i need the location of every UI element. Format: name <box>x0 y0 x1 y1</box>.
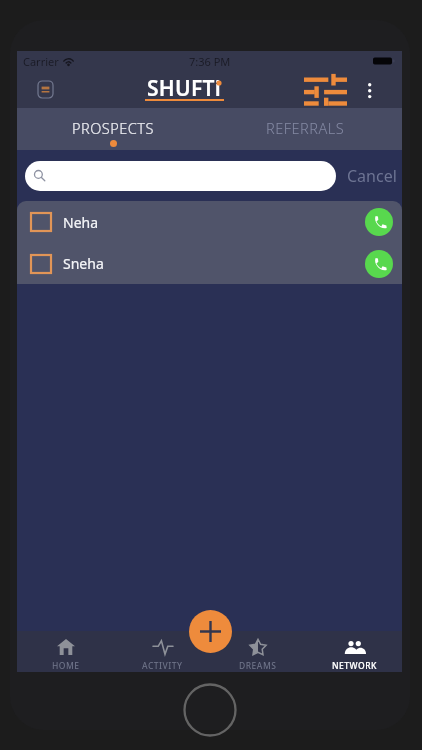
staticText: Sneha <box>63 254 104 273</box>
staticText: Carrier <box>23 54 59 69</box>
staticText: DREAMS <box>239 660 277 672</box>
button[interactable]: Menu <box>32 76 59 103</box>
button[interactable]: ACTIVITY <box>114 631 210 672</box>
staticText: ACTIVITY <box>142 660 183 672</box>
button[interactable]: Add <box>189 610 232 653</box>
button[interactable] <box>25 161 336 191</box>
button[interactable]: PROSPECTS <box>17 108 209 150</box>
staticText: NETWORK <box>332 660 377 672</box>
staticText: Neha <box>63 213 99 232</box>
button[interactable]: Sneha <box>17 243 402 284</box>
button[interactable]: Call Sneha <box>365 250 393 278</box>
staticText: HOME <box>52 660 80 672</box>
button[interactable]: Filter <box>299 69 352 110</box>
button[interactable]: HOME <box>17 631 114 672</box>
button[interactable]: More options <box>358 79 381 102</box>
staticText: REFERRALS <box>266 118 345 138</box>
staticText: PROSPECTS <box>72 118 154 138</box>
staticText: SHUFTi <box>147 74 222 103</box>
button[interactable]: REFERRALS <box>209 108 402 150</box>
button[interactable]: Cancel <box>345 160 399 192</box>
button[interactable]: Neha <box>17 201 402 243</box>
button[interactable]: NETWORK <box>306 631 402 672</box>
staticText: 7:36 PM <box>189 54 231 69</box>
button[interactable]: Call Neha <box>365 208 393 236</box>
staticText: Cancel <box>347 165 397 187</box>
button[interactable]: DREAMS <box>210 631 306 672</box>
